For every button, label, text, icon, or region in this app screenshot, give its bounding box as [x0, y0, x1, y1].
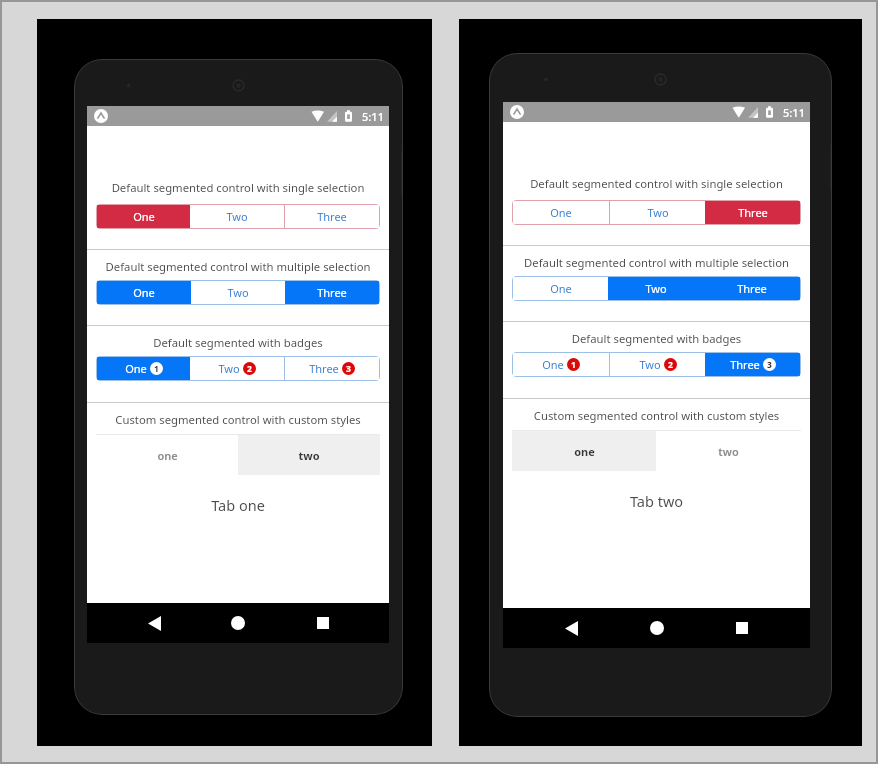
staticText: 5:11 — [783, 105, 805, 120]
staticText: Three — [737, 281, 767, 296]
button[interactable]: two — [238, 435, 380, 475]
staticText: One — [133, 285, 155, 300]
staticText: 1 — [154, 363, 159, 375]
button[interactable]: Home — [639, 610, 675, 646]
button[interactable]: Recents — [305, 605, 341, 641]
staticText: Default segmented with badges — [87, 335, 389, 350]
button[interactable]: one — [96, 435, 238, 475]
staticText: Three — [730, 357, 760, 372]
staticText: Three — [309, 361, 339, 376]
staticText: Tab two — [503, 491, 810, 511]
staticText: Custom segmented control with custom sty… — [87, 412, 389, 427]
button[interactable]: one — [512, 431, 656, 471]
staticText: 2 — [247, 363, 252, 375]
staticText: Default segmented control with single se… — [87, 180, 389, 195]
button[interactable]: Two — [190, 357, 284, 380]
button[interactable]: One — [513, 277, 608, 300]
button[interactable]: Two — [610, 353, 705, 376]
button[interactable]: Two — [608, 277, 704, 300]
staticText: Two — [218, 361, 240, 376]
button[interactable]: Two — [610, 201, 705, 224]
staticText: one — [574, 444, 595, 459]
button[interactable]: Three — [285, 357, 379, 380]
button[interactable]: Back — [553, 610, 589, 646]
staticText: two — [298, 448, 320, 463]
staticText: One — [125, 361, 147, 376]
staticText: Default segmented control with single se… — [503, 176, 810, 191]
staticText: 5:11 — [362, 109, 384, 124]
staticText: Two — [645, 281, 667, 296]
staticText: Two — [647, 205, 669, 220]
staticText: Two — [639, 357, 661, 372]
button[interactable]: One — [97, 357, 190, 380]
staticText: One — [550, 281, 572, 296]
button[interactable]: Three — [705, 201, 800, 224]
staticText: 1 — [571, 359, 576, 371]
staticText: Two — [226, 209, 248, 224]
staticText: Three — [317, 209, 347, 224]
staticText: One — [133, 209, 155, 224]
button[interactable]: Three — [704, 277, 800, 300]
button[interactable]: Three — [705, 353, 800, 376]
staticText: 3 — [767, 359, 772, 371]
staticText: Default segmented with badges — [503, 331, 810, 346]
button[interactable]: One — [513, 353, 609, 376]
button[interactable]: One — [513, 201, 609, 224]
button[interactable]: Home — [220, 605, 256, 641]
staticText: Three — [738, 205, 768, 220]
button[interactable]: One — [97, 205, 190, 228]
button[interactable]: Three — [285, 281, 379, 304]
staticText: 2 — [668, 359, 673, 371]
button[interactable]: two — [656, 431, 801, 471]
button[interactable]: Recents — [724, 610, 760, 646]
button[interactable]: Back — [136, 605, 172, 641]
button[interactable]: Two — [190, 205, 284, 228]
button[interactable]: Three — [285, 205, 379, 228]
staticText: one — [157, 448, 178, 463]
staticText: One — [550, 205, 572, 220]
staticText: One — [542, 357, 564, 372]
staticText: Default segmented control with multiple … — [503, 255, 810, 270]
staticText: Custom segmented control with custom sty… — [503, 408, 810, 423]
staticText: Three — [317, 285, 347, 300]
staticText: Default segmented control with multiple … — [87, 259, 389, 274]
button[interactable]: One — [97, 281, 191, 304]
staticText: 3 — [346, 363, 351, 375]
button[interactable]: Two — [191, 281, 285, 304]
staticText: Tab one — [87, 495, 389, 515]
staticText: Two — [227, 285, 249, 300]
staticText: two — [718, 444, 739, 459]
